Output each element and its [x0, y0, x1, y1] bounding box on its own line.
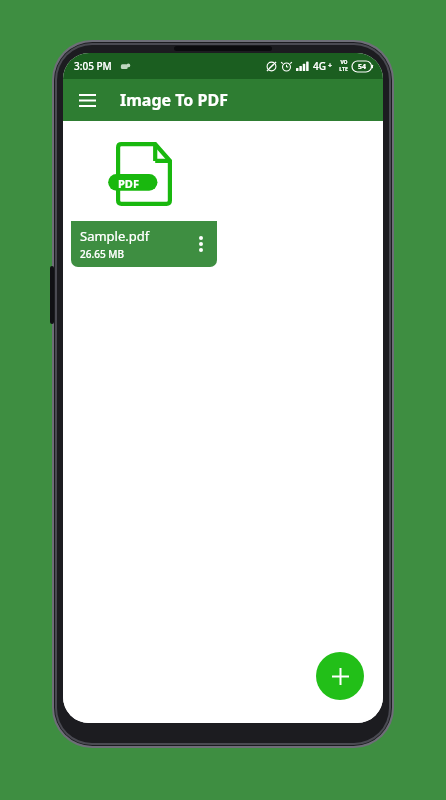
- staticText: Sample.pdf: [80, 227, 150, 245]
- staticText: 26.65 MB: [80, 247, 124, 261]
- button[interactable]: Add new PDF: [316, 652, 364, 700]
- button[interactable]: PDF: [71, 127, 217, 267]
- staticText: 4G: [313, 59, 326, 73]
- button[interactable]: Open navigation menu: [69, 82, 105, 118]
- button[interactable]: More options: [188, 224, 214, 264]
- staticText: PDF: [118, 176, 139, 191]
- staticText: 3:05 PM: [74, 59, 112, 73]
- staticText: LTE: [339, 66, 348, 73]
- staticText: VO: [340, 59, 348, 66]
- staticText: +: [328, 61, 333, 71]
- staticText: 54: [358, 62, 367, 72]
- staticText: Image To PDF: [120, 89, 228, 111]
